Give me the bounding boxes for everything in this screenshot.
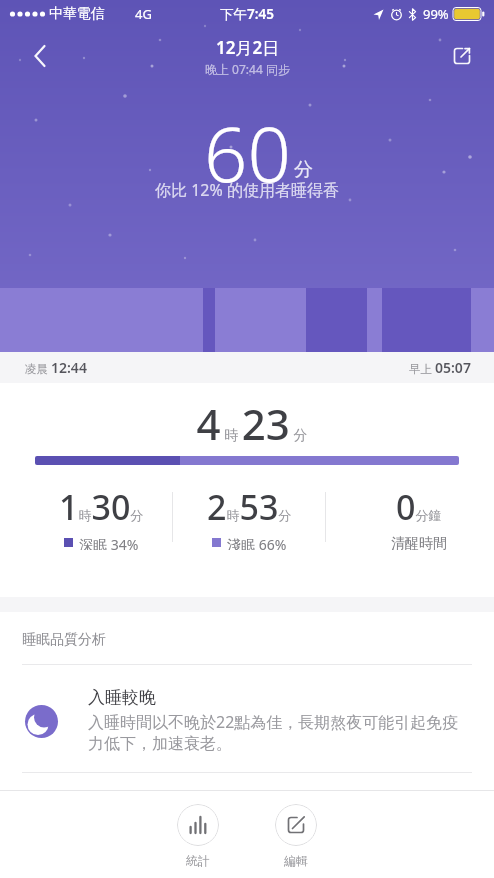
staticText: 編輯 — [284, 853, 308, 868]
staticText: 下午7:45 — [220, 5, 274, 23]
staticText: 統計 — [186, 853, 210, 868]
staticText: 你比 12% 的使用者睡得香 — [155, 179, 339, 201]
staticText: 淺眠 66% — [227, 535, 287, 550]
staticText: 早上 05:07 — [409, 358, 471, 377]
staticText: 0分鐘 — [396, 484, 442, 530]
button[interactable] — [20, 36, 60, 76]
staticText: 分 — [294, 158, 313, 182]
button[interactable]: 編輯 — [275, 804, 317, 868]
staticText: 睡眠品質分析 — [22, 631, 106, 649]
staticText: 晚上 07:44 同步 — [205, 61, 290, 77]
staticText: 4G — [135, 5, 152, 23]
staticText: 12月2日 — [216, 36, 280, 59]
staticText: 4 時 23 分 — [5, 395, 494, 452]
staticText: 凌晨 12:44 — [25, 358, 87, 377]
staticText: 1時30分 — [59, 484, 144, 530]
button[interactable]: 入睡較晚 — [25, 687, 472, 753]
staticText: 99% — [423, 5, 449, 23]
button[interactable] — [442, 36, 482, 76]
staticText: 中華電信 — [49, 5, 105, 23]
staticText: 60 — [204, 101, 291, 187]
staticText: 清醒時間 — [391, 535, 447, 550]
staticText: 深眠 34% — [79, 535, 139, 550]
staticText: 2時53分 — [207, 484, 292, 530]
staticText: 入睡較晚 — [88, 687, 156, 708]
staticText: 入睡時間以不晚於22點為佳，長期熬夜可能引起免疫力低下，加速衰老。 — [88, 711, 472, 753]
button[interactable]: 統計 — [177, 804, 219, 868]
